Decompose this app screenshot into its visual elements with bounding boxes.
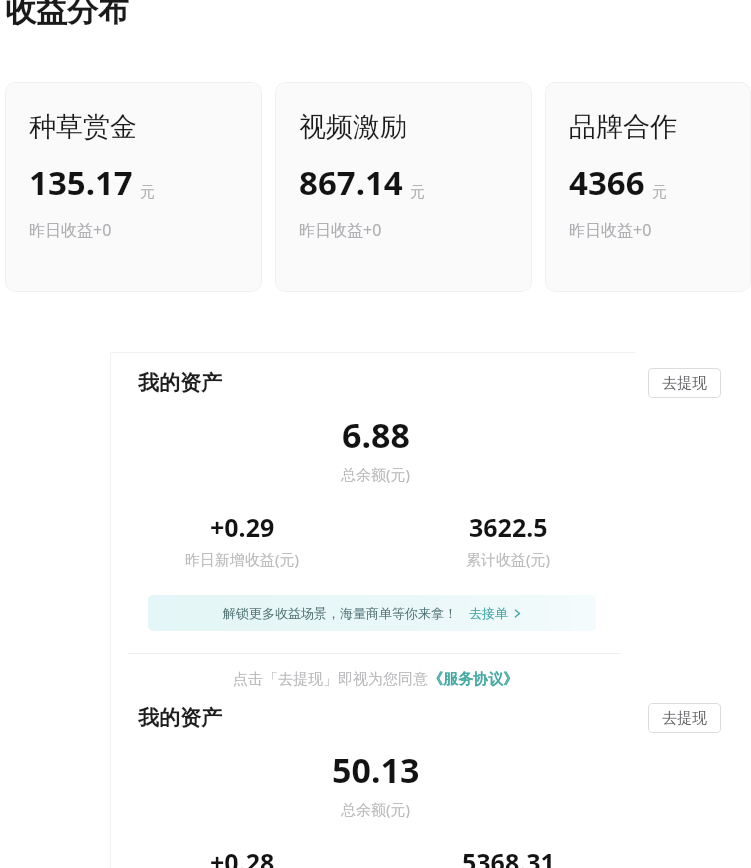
button[interactable]: 解锁更多收益场景，海量商单等你来拿！ xyxy=(148,595,596,631)
staticText: 品牌合作 xyxy=(569,110,677,144)
staticText: 元 xyxy=(410,183,425,202)
staticText: +0.28 xyxy=(210,845,275,868)
staticText: +0.29 xyxy=(210,510,275,544)
staticText: 元 xyxy=(140,183,155,202)
staticText: 总余额(元) xyxy=(341,464,411,484)
staticText: 去提现 xyxy=(662,374,707,393)
staticText: 6.88 xyxy=(342,412,410,458)
staticText: 5368.31 xyxy=(462,845,555,868)
staticText: 《服务协议》 xyxy=(428,670,518,689)
staticText: 收益分布 xyxy=(5,0,129,30)
staticText: 135.17 xyxy=(29,160,133,205)
staticText: 总余额(元) xyxy=(341,799,411,819)
button[interactable]: 视频激励 xyxy=(275,82,532,292)
button[interactable]: 去提现 xyxy=(648,368,721,398)
staticText: 去提现 xyxy=(662,709,707,728)
staticText: 4366 xyxy=(569,160,645,205)
staticText: 昨日收益+0 xyxy=(29,219,112,241)
button[interactable]: 《服务协议》 xyxy=(428,670,518,689)
staticText: 昨日收益+0 xyxy=(299,219,382,241)
staticText: 我的资产 xyxy=(138,370,222,396)
staticText: 50.13 xyxy=(332,747,420,793)
staticText: 视频激励 xyxy=(299,110,407,144)
button[interactable]: 种草赏金 xyxy=(5,82,262,292)
staticText: 3622.5 xyxy=(469,510,548,544)
staticText: 昨日收益+0 xyxy=(569,219,652,241)
staticText: 解锁更多收益场景，海量商单等你来拿！ xyxy=(223,605,457,621)
staticText: 昨日新增收益(元) xyxy=(185,549,300,569)
staticText: 元 xyxy=(652,183,667,202)
button[interactable]: 品牌合作 xyxy=(545,82,751,292)
staticText: 去接单 xyxy=(469,605,508,621)
staticText: 点击「去提现」即视为您同意 xyxy=(233,670,428,689)
button[interactable]: 去提现 xyxy=(648,703,721,733)
staticText: 867.14 xyxy=(299,160,403,205)
staticText: 我的资产 xyxy=(138,705,222,731)
staticText: 种草赏金 xyxy=(29,110,137,144)
staticText: 累计收益(元) xyxy=(466,549,551,569)
